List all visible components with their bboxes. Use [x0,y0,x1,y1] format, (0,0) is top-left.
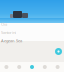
button[interactable]: Home [0,62,13,72]
staticText: Oia [1,21,7,27]
button[interactable]: Saved [38,62,51,72]
button[interactable]: Add [55,48,62,55]
button[interactable]: Trips [26,62,38,72]
button[interactable]: Explore [13,62,26,72]
button[interactable]: Profile [51,62,64,72]
staticText: Santorini [1,30,16,35]
staticText: Aegean Sea [1,38,22,43]
